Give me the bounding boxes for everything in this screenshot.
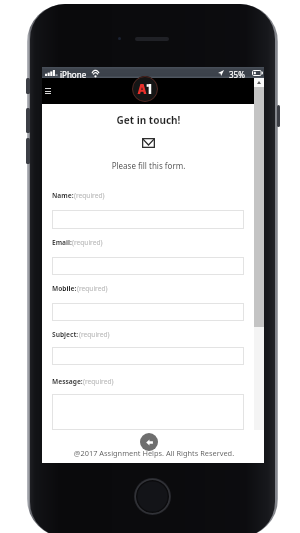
button[interactable] — [52, 347, 244, 365]
button[interactable]: Menu — [45, 88, 51, 94]
staticText: iPhone — [60, 69, 87, 80]
button[interactable]: A1 Home — [132, 76, 158, 102]
button[interactable] — [52, 303, 244, 321]
staticText: 35% — [229, 69, 245, 80]
staticText: Get in touch! — [42, 113, 255, 127]
staticText: (required) — [79, 330, 110, 339]
staticText: Name: — [52, 191, 74, 200]
staticText: @2017 Assignment Helps. All Rights Reser… — [44, 448, 264, 458]
staticText: Mobile: — [52, 284, 77, 293]
staticText: Email: — [52, 238, 72, 247]
staticText: Please fill this form. — [42, 160, 255, 171]
staticText: (required) — [72, 238, 103, 247]
button[interactable]: Back to top — [140, 433, 158, 451]
button[interactable] — [52, 257, 244, 275]
button[interactable] — [52, 210, 244, 229]
staticText: Subject: — [52, 330, 79, 339]
staticText: Message: — [52, 377, 83, 386]
staticText: (required) — [74, 191, 105, 200]
button[interactable]: Scroll up — [254, 78, 264, 87]
button[interactable] — [52, 394, 244, 430]
staticText: (required) — [77, 284, 108, 293]
staticText: (required) — [83, 377, 114, 386]
button[interactable]: Home — [134, 478, 171, 515]
